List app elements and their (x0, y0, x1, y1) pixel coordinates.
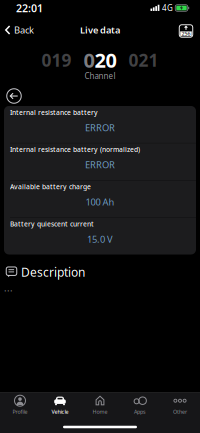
button[interactable]: Back (5, 24, 34, 36)
button[interactable]: Channels (178, 24, 193, 38)
staticText: ERROR (85, 121, 115, 134)
staticText: Vehicle (51, 408, 68, 415)
staticText: Channel (84, 71, 115, 81)
staticText: 100 Ah (85, 196, 114, 208)
button[interactable]: Previous channel (6, 88, 22, 104)
button[interactable]: Home (80, 394, 120, 416)
staticText: Profile (12, 408, 27, 415)
button[interactable]: Apps (120, 394, 160, 416)
button[interactable]: 021 (128, 48, 158, 71)
staticText: 021 (128, 48, 158, 71)
button[interactable]: Battery quiescent current (4, 218, 196, 254)
button[interactable]: Other (160, 394, 200, 416)
staticText: ERROR (85, 159, 115, 171)
staticText: Back (14, 24, 34, 36)
staticText: 15.0 V (87, 233, 113, 245)
staticText: Home (92, 408, 107, 415)
staticText: Battery quiescent current (10, 219, 94, 228)
button[interactable]: Vehicle (40, 394, 80, 416)
staticText: 22:01 (16, 1, 43, 15)
staticText: Apps (134, 408, 146, 415)
staticText: Live data (80, 24, 120, 36)
staticText: Other (173, 408, 187, 415)
staticText: Description (21, 264, 85, 280)
staticText: 4G (162, 3, 173, 13)
staticText: 20 (94, 47, 116, 73)
button[interactable]: Internal resistance battery (normalized) (4, 143, 196, 180)
staticText: Available battery charge (10, 182, 91, 191)
staticText: ... (4, 282, 13, 294)
button[interactable]: Internal resistance battery (4, 106, 196, 143)
staticText: 0 (83, 47, 94, 73)
button[interactable]: 019 (41, 48, 71, 71)
staticText: 256 (181, 30, 190, 37)
button[interactable]: Profile (0, 394, 40, 416)
staticText: Internal resistance battery (normalized) (10, 145, 140, 154)
staticText: Internal resistance battery (10, 108, 98, 117)
staticText: 019 (41, 48, 71, 71)
button[interactable]: Available battery charge (4, 180, 196, 217)
